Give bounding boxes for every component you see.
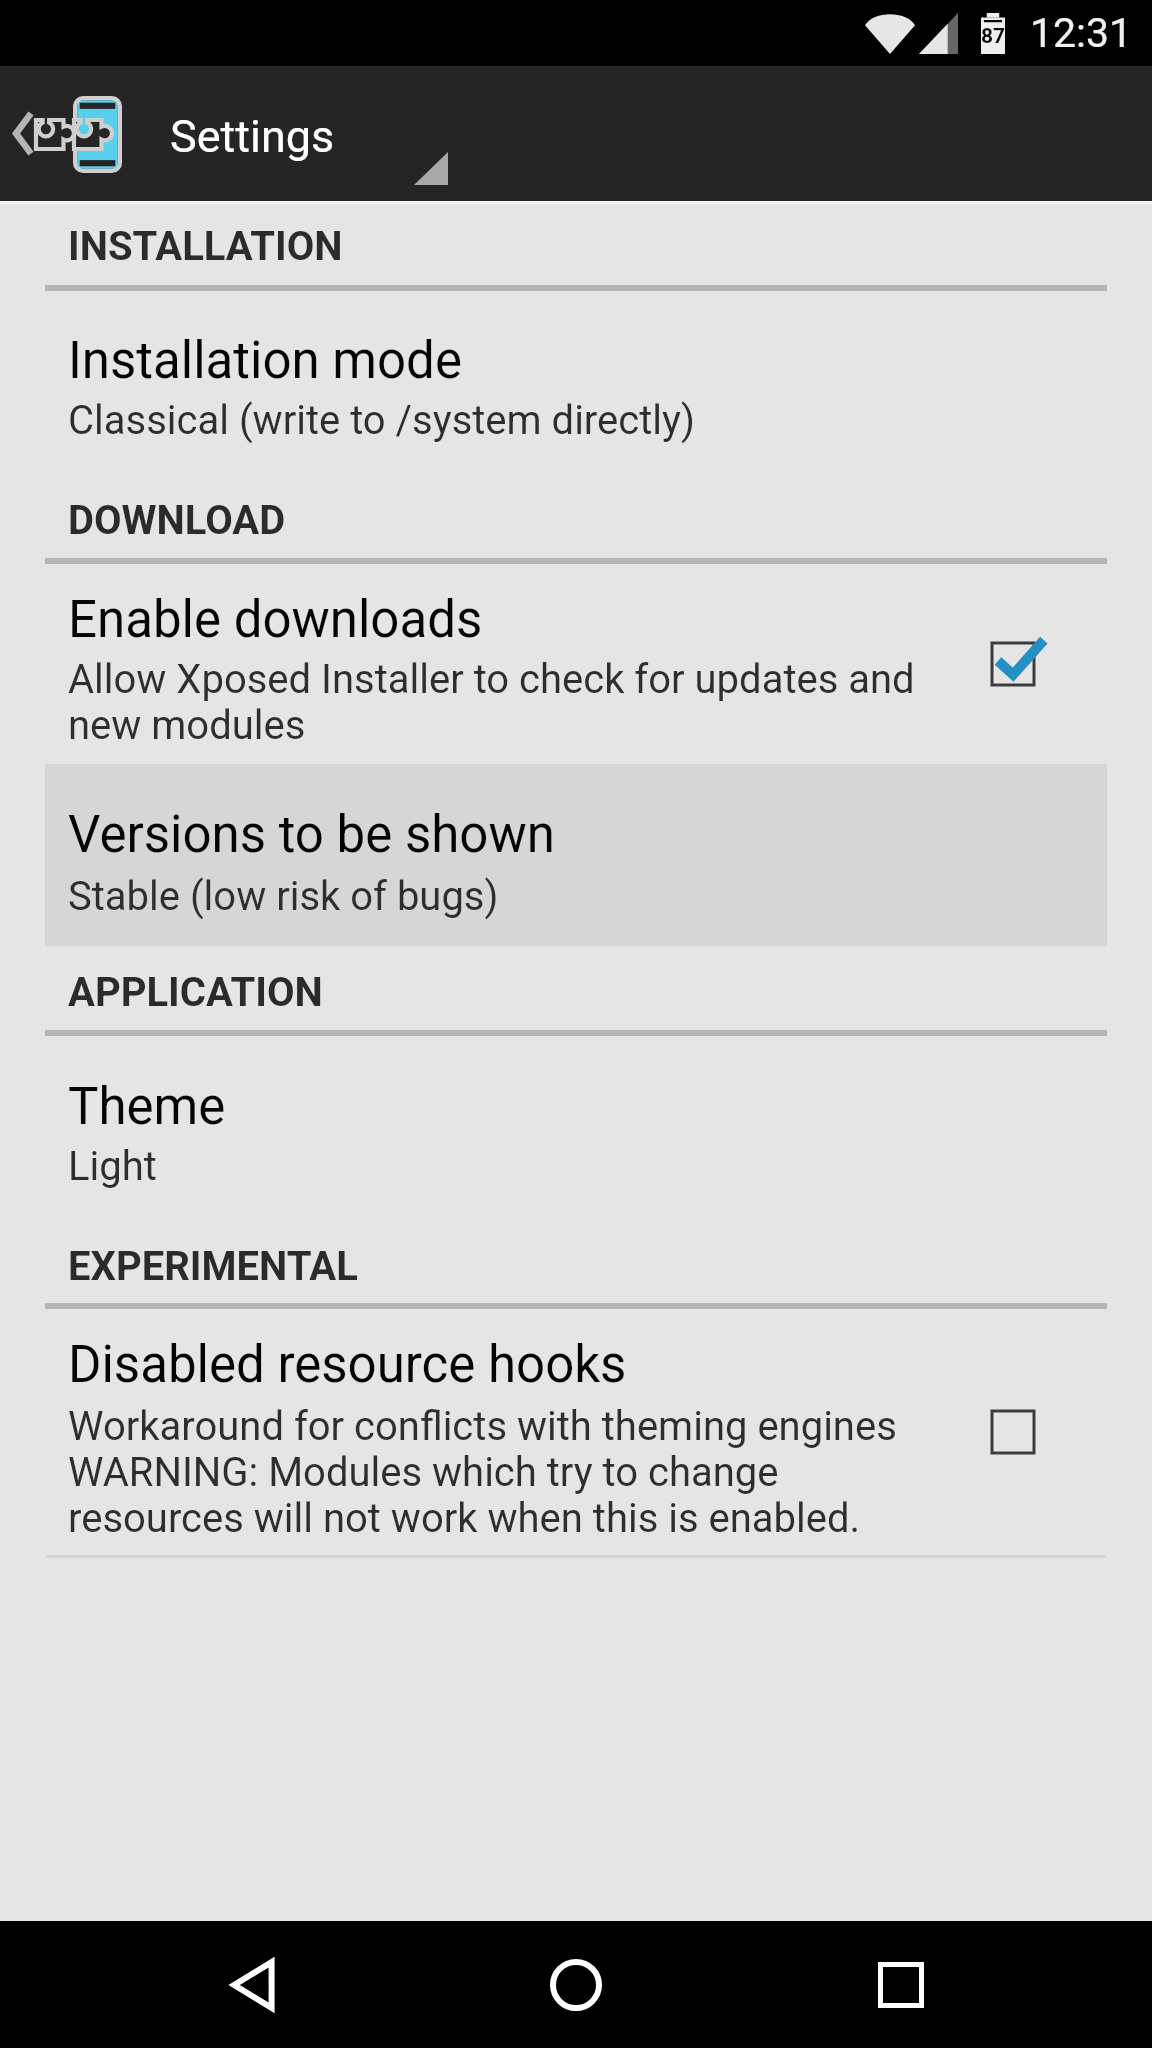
staticText: Theme [68, 1077, 226, 1137]
staticText: 87 [981, 24, 1005, 49]
staticText: INSTALLATION [68, 223, 343, 270]
staticText: Installation mode [68, 331, 462, 391]
staticText: Settings [170, 110, 335, 163]
staticText: EXPERIMENTAL [68, 1243, 358, 1290]
staticText: Stable (low risk of bugs) [68, 873, 499, 920]
button[interactable]: Versions to be shown [45, 764, 1107, 946]
button[interactable]: Installation mode [45, 291, 1107, 444]
button[interactable]: Disabled resource hooks [45, 1309, 1107, 1555]
button[interactable]: Enable downloads [45, 564, 1107, 764]
button[interactable]: Back [191, 1921, 321, 2048]
staticText: 12:31 [1030, 9, 1133, 57]
button[interactable]: Navigate up [0, 66, 1152, 201]
staticText: Versions to be shown [68, 805, 555, 865]
staticText: Enable downloads [68, 590, 483, 650]
staticText: APPLICATION [68, 969, 323, 1016]
staticText: Disabled resource hooks [68, 1335, 627, 1395]
button[interactable]: Theme [45, 1036, 1107, 1190]
staticText: DOWNLOAD [68, 497, 286, 544]
staticText: Allow Xposed Installer to check for upda… [68, 656, 915, 749]
staticText: Light [68, 1143, 157, 1190]
button[interactable]: Home [511, 1921, 641, 2048]
staticText: Workaround for conflicts with theming en… [68, 1403, 897, 1542]
button[interactable]: Recent apps [832, 1921, 962, 2048]
staticText: Classical (write to /system directly) [68, 397, 695, 444]
